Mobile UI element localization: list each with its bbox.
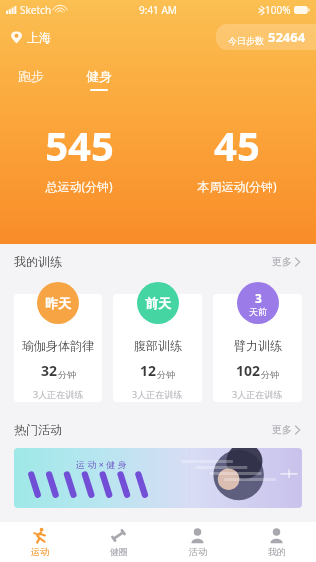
staticText: 545 — [45, 118, 114, 172]
staticText: 分钟 — [157, 369, 175, 380]
staticText: 活动 — [189, 546, 207, 557]
button[interactable]: 更多 — [270, 253, 302, 270]
staticText: 3人正在训练 — [132, 388, 183, 400]
staticText: 昨天 — [45, 295, 71, 311]
staticText: 32 — [41, 361, 58, 380]
button[interactable]: 运动 — [0, 522, 79, 562]
staticText: 3人正在训练 — [33, 388, 84, 400]
staticText: 天前 — [249, 306, 267, 317]
staticText: 运动 — [31, 546, 49, 557]
other: 运动 — [31, 527, 48, 544]
other: 健圈 — [110, 527, 127, 544]
staticText: 我的训练 — [14, 254, 62, 269]
staticText: 总运动(分钟) — [45, 178, 113, 194]
staticText: 跑步 — [18, 68, 44, 84]
button[interactable]: 腹部训练 — [113, 294, 202, 402]
staticText: 3人正在训练 — [232, 388, 283, 400]
staticText: 腹部训练 — [134, 338, 182, 353]
staticText: 我的 — [268, 546, 286, 557]
staticText: 今日步数 — [228, 35, 264, 46]
button[interactable]: 用户 — [158, 522, 237, 562]
staticText: 上海 — [27, 30, 51, 45]
staticText: 3 — [255, 290, 262, 306]
staticText: 12 — [140, 361, 157, 380]
staticText: Sketch — [20, 3, 52, 17]
staticText: 臂力训练 — [234, 338, 282, 353]
staticText: 45 — [214, 118, 260, 172]
button[interactable]: 上海 — [10, 28, 51, 47]
button[interactable]: 臂力训练 — [213, 294, 302, 402]
staticText: 分钟 — [261, 369, 279, 380]
button[interactable]: 运 动 × 健 身 — [14, 448, 302, 508]
staticText: 健圈 — [110, 546, 128, 557]
staticText: 102 — [236, 361, 261, 380]
staticText: 热门活动 — [14, 422, 62, 437]
button[interactable]: 瑜伽身体韵律 — [14, 294, 102, 402]
staticText: 9:41 AM — [139, 3, 177, 17]
other: 用户 — [189, 527, 206, 544]
staticText: 更多 — [272, 423, 292, 436]
staticText: 52464 — [268, 28, 306, 46]
staticText: 健身 — [86, 68, 112, 84]
button[interactable]: 用户 — [237, 522, 316, 562]
other: 用户 — [268, 527, 285, 544]
button[interactable]: 健身 — [82, 66, 116, 93]
staticText: 运 动 × 健 身 — [76, 458, 127, 470]
staticText: 前天 — [145, 295, 171, 311]
button[interactable]: 更多 — [270, 421, 302, 438]
staticText: 100% — [265, 3, 291, 17]
button[interactable]: 健圈 — [79, 522, 158, 562]
button[interactable]: 今日步数 — [216, 24, 316, 50]
button[interactable]: 跑步 — [14, 66, 48, 91]
staticText: 瑜伽身体韵律 — [22, 338, 94, 353]
staticText: 更多 — [272, 255, 292, 268]
staticText: 分钟 — [58, 369, 76, 380]
staticText: 本周运动(分钟) — [197, 178, 277, 194]
